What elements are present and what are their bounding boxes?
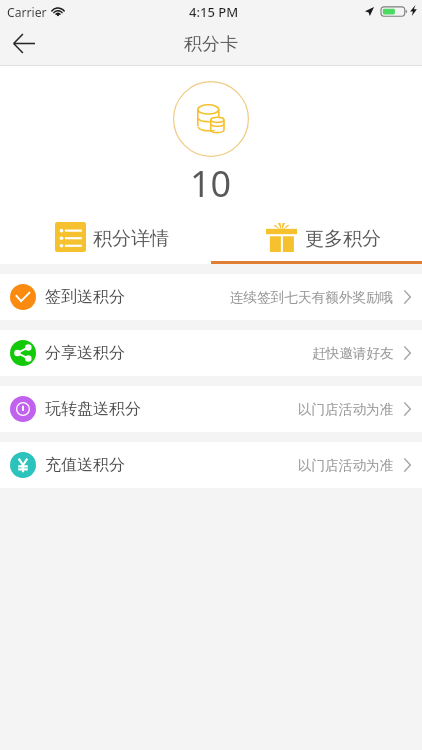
staticText: 充值送积分 [45,455,125,475]
button[interactable]: 签到送积分 [0,274,422,320]
button[interactable]: 更多积分 [211,208,422,264]
staticText: 玩转盘送积分 [45,399,141,419]
staticText: 10 [190,159,232,208]
staticText: 以门店活动为准 [298,457,394,474]
button[interactable]: 积分详情 [0,208,211,264]
staticText: 分享送积分 [45,343,125,363]
staticText: 签到送积分 [45,287,125,307]
staticText: 以门店活动为准 [298,401,394,418]
staticText: 连续签到七天有额外奖励哦 [230,289,394,306]
staticText: 赶快邀请好友 [312,345,394,362]
staticText: 积分详情 [93,227,169,251]
staticText: 4:15 PM [189,3,239,21]
button[interactable]: 充值送积分 [0,442,422,488]
button[interactable]: Back [0,24,44,66]
button[interactable]: 玩转盘送积分 [0,386,422,432]
button[interactable]: 分享送积分 [0,330,422,376]
staticText: Carrier [7,4,47,21]
staticText: 积分卡 [184,33,238,56]
staticText: 更多积分 [305,227,381,251]
